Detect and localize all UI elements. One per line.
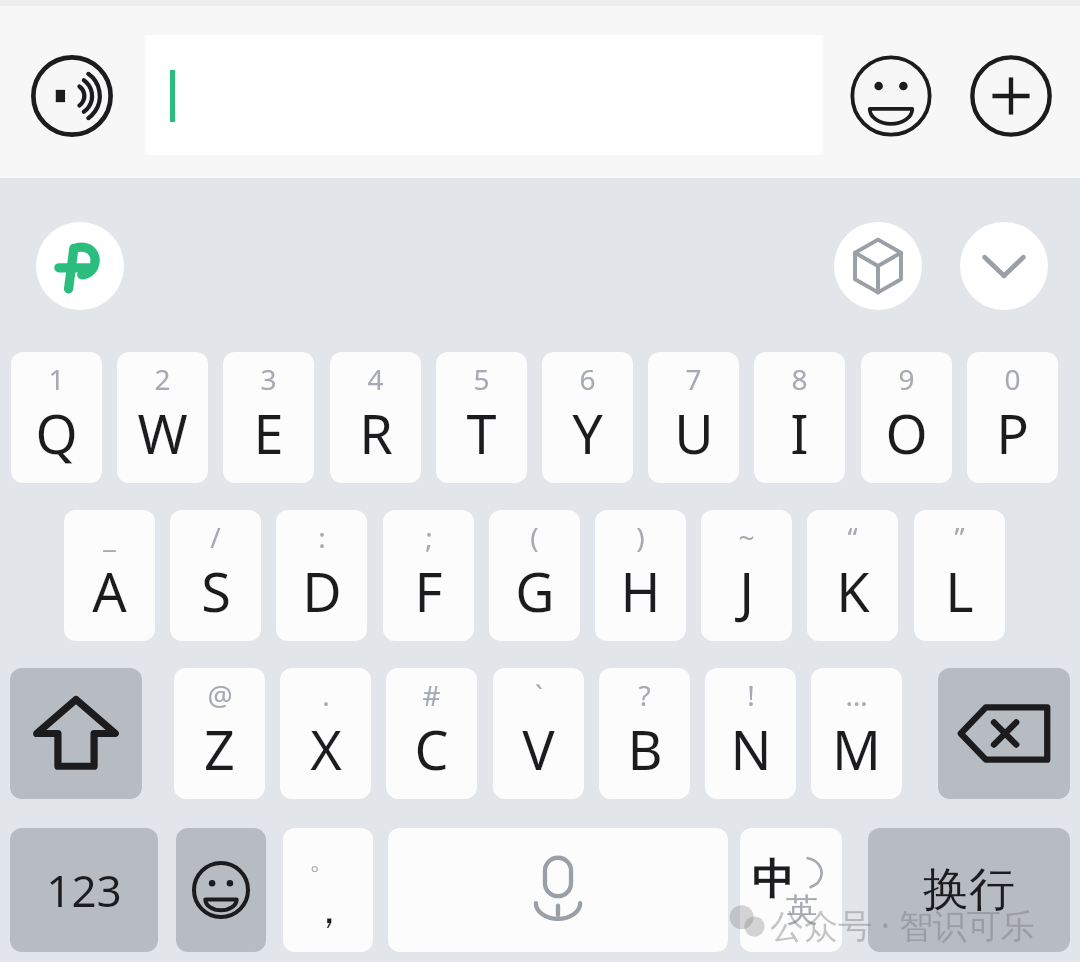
- staticText: /: [210, 518, 221, 552]
- button[interactable]: ”: [914, 510, 1005, 641]
- staticText: O: [885, 396, 928, 470]
- button[interactable]: !: [705, 668, 796, 799]
- button[interactable]: Shift: [10, 668, 142, 799]
- staticText: :: [318, 518, 326, 552]
- staticText: !: [747, 676, 755, 710]
- staticText: M: [832, 712, 881, 786]
- staticText: Z: [204, 712, 235, 786]
- staticText: L: [945, 554, 974, 628]
- staticText: G: [515, 554, 555, 628]
- button[interactable]: ˋ: [493, 668, 584, 799]
- staticText: 中: [752, 854, 794, 907]
- button[interactable]: 换行: [868, 828, 1070, 952]
- staticText: B: [627, 712, 663, 786]
- staticText: ): [636, 518, 645, 552]
- staticText: 1: [48, 360, 65, 394]
- staticText: T: [466, 396, 497, 470]
- staticText: 7: [685, 360, 702, 394]
- button[interactable]: 8: [754, 352, 845, 483]
- staticText: ~: [738, 518, 755, 552]
- staticText: K: [836, 554, 870, 628]
- staticText: H: [620, 554, 661, 628]
- button[interactable]: 6: [542, 352, 633, 483]
- button[interactable]: #: [386, 668, 477, 799]
- button[interactable]: 0: [967, 352, 1058, 483]
- button[interactable]: “: [807, 510, 898, 641]
- button[interactable]: 1: [11, 352, 102, 483]
- staticText: X: [310, 712, 342, 786]
- button[interactable]: Space: [388, 828, 728, 952]
- button[interactable]: 7: [648, 352, 739, 483]
- staticText: W: [137, 396, 188, 470]
- staticText: .: [322, 676, 330, 710]
- staticText: @: [207, 676, 233, 710]
- staticText: S: [201, 554, 231, 628]
- staticText: P: [996, 396, 1029, 470]
- staticText: 123: [46, 860, 122, 920]
- staticText: U: [674, 396, 714, 470]
- staticText: 8: [791, 360, 808, 394]
- button[interactable]: 5: [436, 352, 527, 483]
- staticText: E: [253, 396, 284, 470]
- button[interactable]: /: [170, 510, 261, 641]
- staticText: D: [302, 554, 342, 628]
- staticText: 9: [898, 360, 915, 394]
- staticText: A: [92, 554, 127, 628]
- button[interactable]: Voice input: [30, 54, 114, 138]
- staticText: 公众号 · 智识可乐: [770, 902, 1035, 948]
- button[interactable]: (: [489, 510, 580, 641]
- staticText: ”: [954, 518, 965, 552]
- staticText: J: [739, 554, 754, 628]
- button[interactable]: 3: [223, 352, 314, 483]
- button[interactable]: _: [64, 510, 155, 641]
- staticText: 3: [260, 360, 277, 394]
- staticText: 0: [1004, 360, 1021, 394]
- staticText: ;: [425, 518, 433, 552]
- button[interactable]: 9: [861, 352, 952, 483]
- staticText: C: [414, 712, 449, 786]
- button[interactable]: Input method settings: [36, 222, 124, 310]
- button[interactable]: ;: [383, 510, 474, 641]
- button[interactable]: .: [280, 668, 371, 799]
- staticText: 6: [579, 360, 596, 394]
- staticText: I: [790, 396, 809, 470]
- staticText: “: [847, 518, 858, 552]
- staticText: ，: [309, 884, 349, 934]
- button[interactable]: ~: [701, 510, 792, 641]
- button[interactable]: Toolbox: [834, 222, 922, 310]
- button[interactable]: [145, 35, 823, 155]
- button[interactable]: Backspace: [938, 668, 1070, 799]
- button[interactable]: 4: [330, 352, 421, 483]
- button[interactable]: @: [174, 668, 265, 799]
- staticText: 英: [786, 890, 818, 930]
- staticText: F: [414, 554, 443, 628]
- button[interactable]: ?: [599, 668, 690, 799]
- button[interactable]: …: [811, 668, 902, 799]
- staticText: #: [422, 676, 441, 710]
- button[interactable]: More: [969, 54, 1053, 138]
- button[interactable]: Emoji: [849, 54, 933, 138]
- staticText: (: [530, 518, 539, 552]
- button[interactable]: Hide keyboard: [960, 222, 1048, 310]
- staticText: 4: [367, 360, 384, 394]
- button[interactable]: ): [595, 510, 686, 641]
- staticText: 2: [154, 360, 171, 394]
- staticText: 换行: [923, 861, 1015, 919]
- staticText: N: [730, 712, 772, 786]
- staticText: R: [359, 396, 393, 470]
- button[interactable]: 中: [740, 828, 842, 952]
- button[interactable]: :: [276, 510, 367, 641]
- button[interactable]: 。: [283, 828, 373, 952]
- staticText: …: [845, 676, 868, 710]
- staticText: V: [522, 712, 555, 786]
- staticText: 5: [473, 360, 490, 394]
- button[interactable]: 2: [117, 352, 208, 483]
- staticText: ˋ: [535, 676, 543, 710]
- staticText: _: [103, 518, 116, 552]
- staticText: ?: [638, 676, 651, 710]
- staticText: Q: [35, 396, 78, 470]
- button[interactable]: Emoji keyboard: [176, 828, 266, 952]
- staticText: 。: [309, 844, 335, 877]
- staticText: Y: [572, 396, 603, 470]
- button[interactable]: 123: [10, 828, 158, 952]
